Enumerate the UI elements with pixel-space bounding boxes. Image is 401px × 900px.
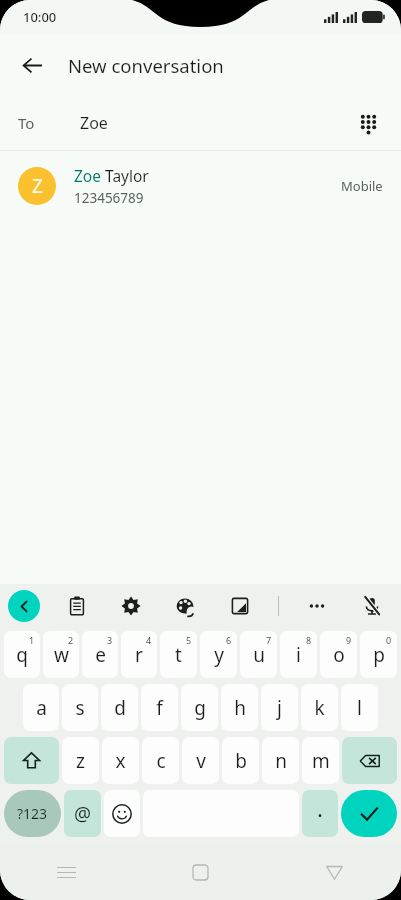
staticText: w — [54, 642, 69, 668]
staticText: i — [296, 642, 301, 668]
button[interactable]: Voice input off — [355, 589, 389, 623]
staticText: k — [314, 695, 325, 721]
staticText: 2 — [68, 634, 74, 646]
staticText: a — [36, 695, 47, 721]
staticText: v — [196, 748, 206, 774]
button[interactable]: More options — [300, 589, 334, 623]
staticText: c — [156, 748, 166, 774]
button[interactable]: Backspace — [342, 737, 397, 784]
button[interactable]: g — [181, 684, 218, 731]
staticText: z — [76, 748, 85, 774]
button[interactable]: j — [261, 684, 298, 731]
button[interactable]: Collapse toolbar — [8, 590, 40, 622]
button[interactable]: o — [320, 631, 357, 678]
staticText: y — [214, 642, 224, 668]
staticText: 3 — [107, 634, 113, 646]
button[interactable]: Theme — [168, 589, 202, 623]
button[interactable]: h — [221, 684, 258, 731]
button[interactable]: p — [360, 631, 397, 678]
button[interactable]: Clipboard — [60, 589, 94, 623]
button[interactable]: l — [341, 684, 378, 731]
button[interactable]: Settings — [114, 589, 148, 623]
button[interactable]: b — [222, 737, 259, 784]
staticText: x — [115, 748, 126, 774]
button[interactable]: v — [182, 737, 219, 784]
staticText: m — [312, 748, 330, 774]
staticText: r — [135, 642, 143, 668]
staticText: 0 — [386, 634, 392, 646]
staticText: 8 — [306, 634, 312, 646]
staticText: New conversation — [68, 53, 224, 78]
button[interactable]: Back — [12, 45, 52, 85]
button[interactable]: Emoji — [104, 790, 140, 837]
button[interactable]: e — [82, 631, 118, 678]
button[interactable]: k — [301, 684, 338, 731]
staticText: To — [18, 113, 35, 133]
staticText: 7 — [266, 634, 272, 646]
button[interactable]: Resize keyboard — [223, 589, 257, 623]
staticText: Zoe Taylor — [74, 165, 149, 186]
button[interactable]: w — [43, 631, 79, 678]
staticText: t — [175, 642, 182, 668]
button[interactable]: i — [280, 631, 317, 678]
staticText: p — [373, 642, 385, 668]
button[interactable]: Recent apps — [0, 844, 133, 900]
button[interactable]: s — [62, 684, 98, 731]
staticText: j — [277, 695, 282, 721]
button[interactable]: Home — [133, 844, 267, 900]
button[interactable]: t — [160, 631, 197, 678]
button[interactable]: Shift — [4, 737, 59, 784]
staticText: 6 — [226, 634, 232, 646]
button[interactable]: q — [4, 631, 40, 678]
button[interactable]: Dialpad — [347, 102, 389, 144]
staticText: q — [16, 642, 28, 668]
button[interactable]: m — [302, 737, 339, 784]
staticText: Z — [32, 173, 43, 199]
staticText: 5 — [186, 634, 192, 646]
button[interactable]: Z — [0, 151, 401, 221]
staticText: h — [234, 695, 246, 721]
button[interactable]: f — [141, 684, 178, 731]
button[interactable]: Back — [267, 844, 401, 900]
staticText: l — [357, 695, 362, 721]
staticText: u — [253, 642, 265, 668]
staticText: Mobile — [341, 177, 383, 195]
staticText: f — [156, 695, 163, 721]
button[interactable]: y — [200, 631, 237, 678]
staticText: n — [275, 748, 287, 774]
button[interactable]: d — [101, 684, 138, 731]
staticText: 4 — [146, 634, 152, 646]
button[interactable]: n — [262, 737, 299, 784]
staticText: e — [95, 642, 106, 668]
button[interactable]: ?123 — [4, 790, 61, 837]
button[interactable]: z — [62, 737, 99, 784]
staticText: b — [235, 748, 247, 774]
staticText: d — [114, 695, 126, 721]
button[interactable]: r — [121, 631, 157, 678]
button[interactable]: Period — [302, 790, 338, 837]
button[interactable]: u — [240, 631, 277, 678]
staticText: 123456789 — [74, 189, 144, 207]
staticText: 10:00 — [23, 8, 57, 26]
staticText: @ — [74, 801, 92, 827]
staticText: s — [75, 695, 85, 721]
button[interactable]: a — [23, 684, 59, 731]
staticText: g — [194, 695, 206, 721]
button[interactable]: Send — [341, 790, 397, 837]
staticText: 1 — [29, 634, 35, 646]
button[interactable]: At sign — [64, 790, 101, 837]
staticText: 9 — [346, 634, 352, 646]
staticText: Zoe — [80, 112, 108, 134]
button[interactable]: c — [142, 737, 179, 784]
button[interactable]: x — [102, 737, 139, 784]
staticText: ?123 — [17, 804, 48, 823]
staticText: o — [333, 642, 345, 668]
